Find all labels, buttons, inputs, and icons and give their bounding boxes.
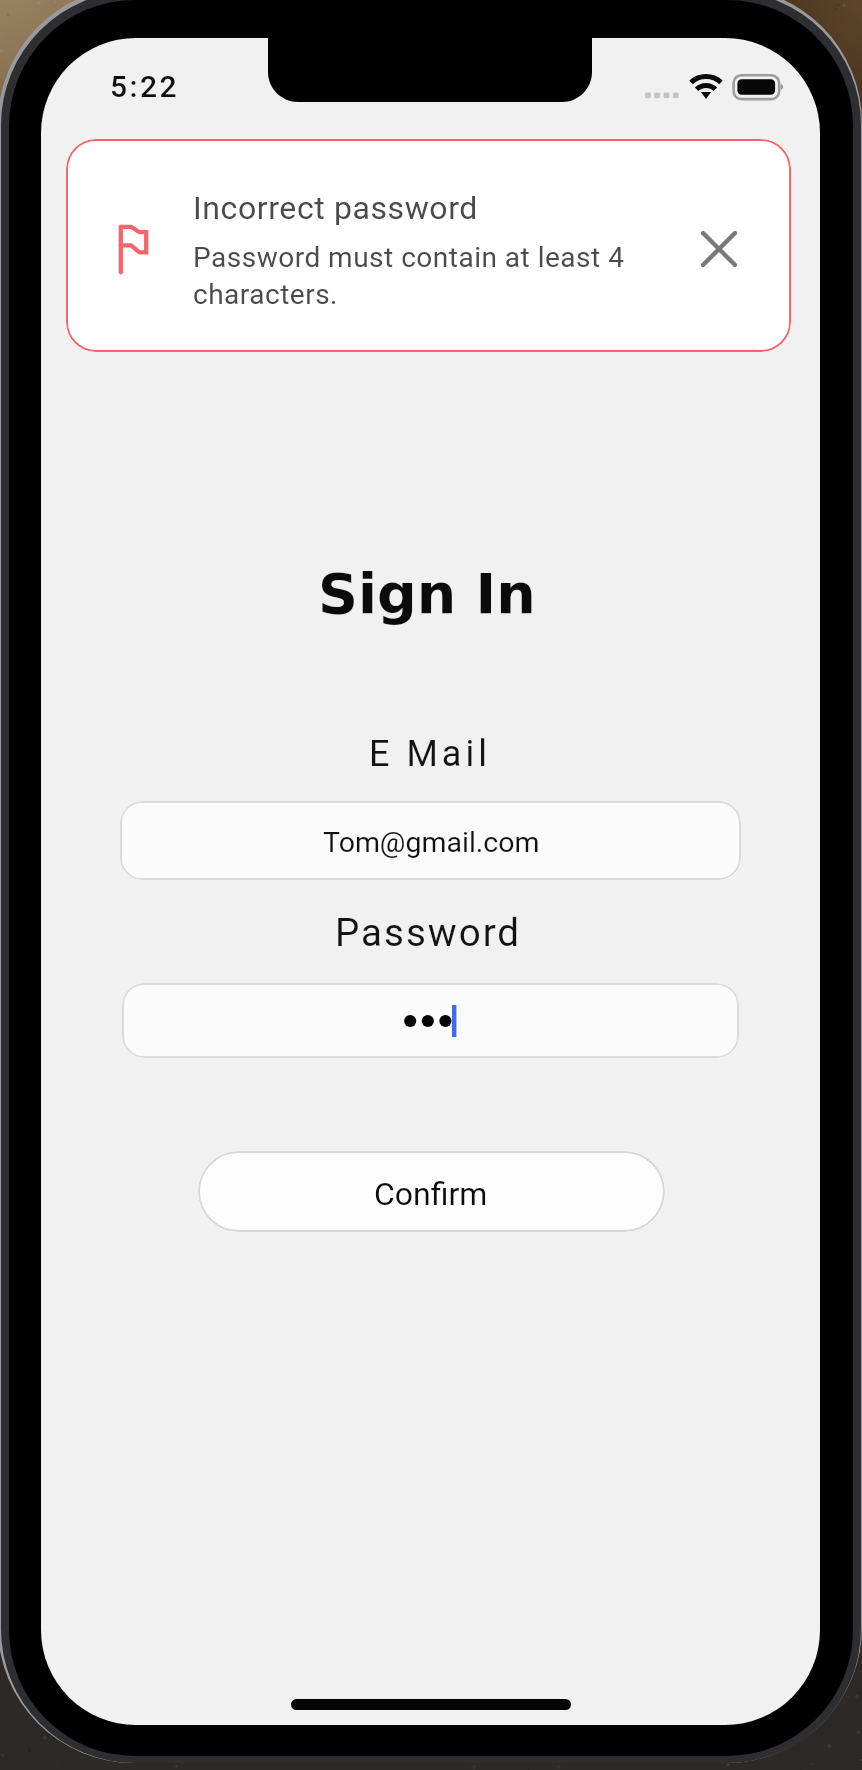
staticText: characters.	[193, 278, 338, 311]
button[interactable]: Tom@gmail.com	[120, 801, 741, 880]
button[interactable]: Confirm	[198, 1151, 665, 1232]
staticText: Tom@gmail.com	[323, 826, 540, 859]
button[interactable]: Dismiss	[674, 204, 764, 294]
staticText: Confirm	[374, 1175, 488, 1213]
staticText: Password must contain at least 4	[193, 241, 625, 274]
button[interactable]	[122, 983, 739, 1058]
staticText: Password	[335, 910, 522, 955]
staticText: 5:22	[110, 69, 180, 104]
staticText: Sign In	[318, 561, 536, 626]
staticText: Incorrect password	[193, 189, 478, 227]
staticText: E Mail	[369, 733, 491, 775]
